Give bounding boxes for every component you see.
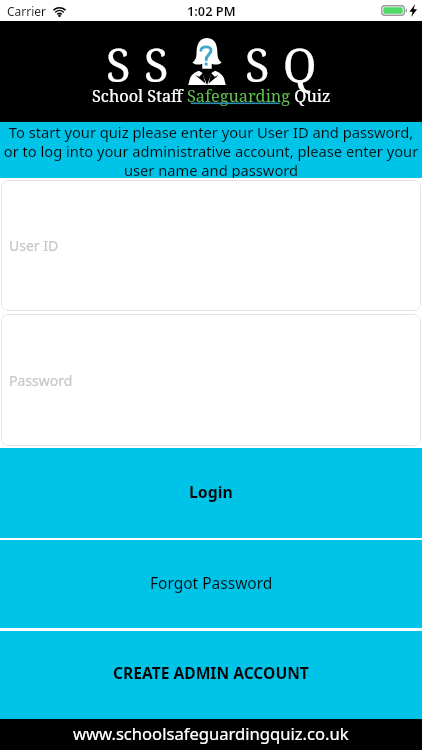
staticText: 1:02 PM	[187, 2, 236, 19]
staticText: CREATE ADMIN ACCOUNT	[113, 662, 309, 683]
staticText: S	[106, 34, 131, 95]
staticText: Password	[9, 371, 73, 390]
staticText: Carrier	[7, 3, 47, 19]
button[interactable]: Login	[0, 448, 422, 538]
staticText: Login	[189, 481, 233, 503]
staticText: S	[245, 34, 270, 95]
staticText: Forgot Password	[150, 572, 273, 593]
button[interactable]: CREATE ADMIN ACCOUNT	[0, 631, 422, 719]
button[interactable]: Forgot Password	[0, 540, 422, 628]
button[interactable]: User ID	[1, 180, 421, 311]
staticText: To start your quiz please enter your Use…	[0, 122, 422, 178]
staticText: Q	[283, 34, 317, 95]
staticText: School Staff Safeguarding Quiz	[92, 85, 331, 107]
staticText: User ID	[9, 236, 59, 255]
staticText: www.schoolsafeguardingquiz.co.uk	[73, 722, 349, 745]
staticText: S	[144, 34, 169, 95]
button[interactable]: Password	[1, 314, 421, 446]
